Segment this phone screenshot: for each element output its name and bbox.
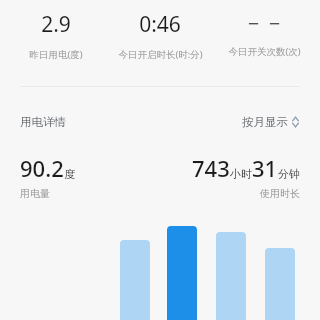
staticText: 0:46 [139, 10, 181, 39]
staticText: 小时 [230, 167, 252, 181]
button[interactable]: 90.2 [20, 153, 75, 200]
button[interactable]: 743 [192, 153, 300, 200]
button[interactable] [167, 226, 197, 320]
staticText: 昨日用电(度) [29, 48, 83, 61]
staticText: 按月显示 [242, 115, 288, 129]
staticText: 使用时长 [260, 187, 300, 200]
button[interactable]: 用电详情 [20, 115, 66, 129]
staticText: 90.2 [20, 153, 64, 183]
staticText: 今日开启时长(时:分) [118, 48, 203, 61]
staticText: 度 [64, 167, 75, 181]
staticText: －－ [243, 10, 285, 36]
button[interactable] [265, 248, 295, 320]
staticText: 今日开关次数(次) [228, 45, 301, 58]
other: 切换显示周期 [291, 116, 300, 128]
staticText: 用电详情 [20, 115, 66, 129]
button[interactable]: －－ [212, 10, 316, 58]
staticText: 分钟 [278, 167, 300, 181]
staticText: 31 [252, 153, 278, 183]
staticText: 2.9 [41, 10, 71, 39]
staticText: 743 [192, 153, 230, 183]
staticText: 用电量 [20, 187, 50, 200]
button[interactable]: 按月显示 [242, 115, 300, 129]
button[interactable]: 0:46 [108, 10, 212, 61]
button[interactable]: 2.9 [4, 10, 108, 61]
